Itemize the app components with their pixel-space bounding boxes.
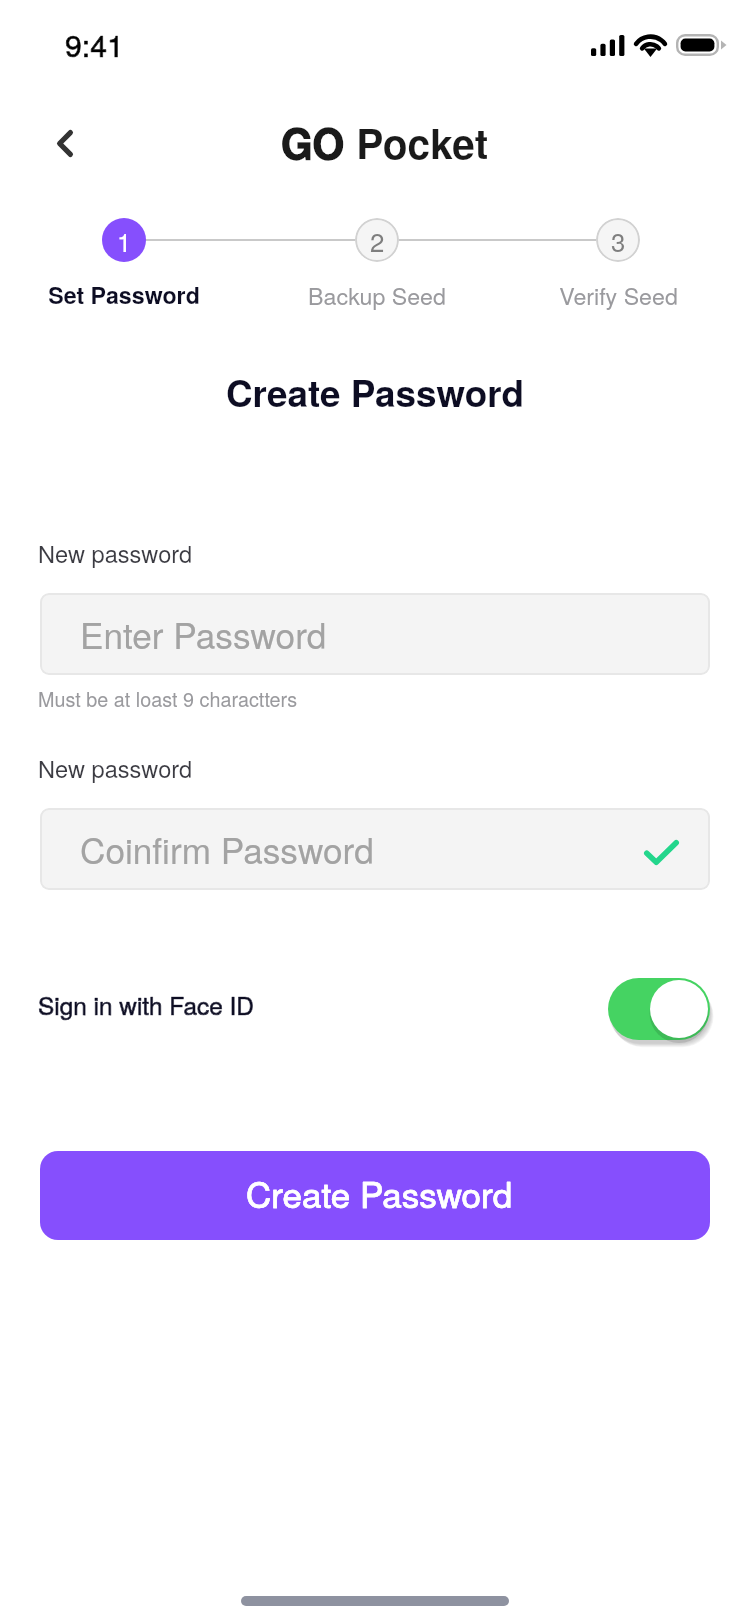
staticText: Sign in with Face ID — [38, 987, 254, 1022]
button[interactable]: Enter Password — [40, 593, 710, 675]
staticText: Pocket — [345, 113, 489, 171]
staticText: Sign in with Face ID — [38, 987, 254, 1022]
button[interactable]: Back — [21, 99, 109, 187]
button[interactable]: Sign in with Face ID toggle — [608, 978, 710, 1040]
button[interactable]: 3 — [596, 218, 640, 262]
button[interactable]: 1 — [102, 218, 146, 262]
button[interactable]: Create Password — [40, 1151, 710, 1240]
staticText: Coinfirm Password — [80, 824, 374, 874]
button[interactable]: 2 — [355, 218, 399, 262]
staticText: Create Password — [246, 1168, 513, 1218]
staticText: 3 — [611, 222, 626, 259]
staticText: GO — [281, 113, 345, 171]
staticText: Set Password — [48, 278, 200, 311]
staticText: New password — [38, 536, 193, 570]
staticText: Backup Seed — [308, 278, 446, 311]
staticText: Must be at loast 9 charactters — [38, 684, 298, 712]
staticText: 9:41 — [65, 22, 124, 65]
staticText: Enter Password — [80, 609, 327, 659]
staticText: 9:41 — [65, 22, 124, 65]
staticText: 1 — [117, 222, 132, 259]
staticText: Verify Seed — [559, 278, 678, 311]
staticText: Create Password — [0, 366, 750, 419]
staticText: New password — [38, 751, 193, 785]
button[interactable]: Coinfirm Password — [40, 808, 710, 890]
staticText: 2 — [370, 222, 385, 259]
staticText: Create Password — [246, 1168, 513, 1218]
